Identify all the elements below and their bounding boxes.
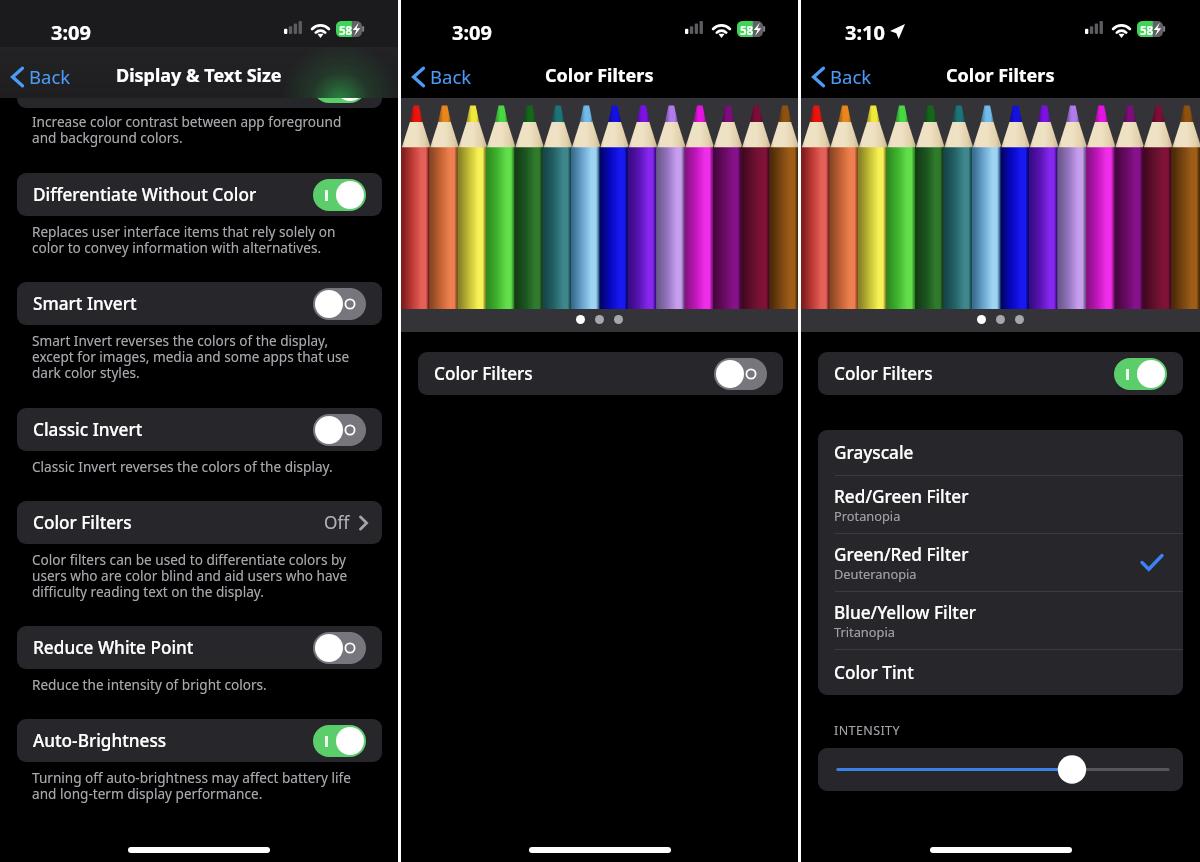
button[interactable]: Toggle off [714,358,767,390]
button[interactable]: Blue/Yellow Filter [818,592,1183,649]
staticText: Color Filters [434,362,533,385]
button[interactable]: Toggle off [313,414,366,446]
staticText: 3:10 [845,19,885,46]
button[interactable]: Color Filters [418,352,783,395]
staticText: 58 [1140,23,1154,39]
staticText: Deuteranopia [834,565,917,582]
staticText: Color Filters [545,63,654,88]
button[interactable]: Page 1 [977,315,986,324]
staticText: 58 [339,23,353,39]
staticText: Smart Invert [33,292,137,315]
button[interactable]: Page 3 [614,315,623,324]
staticText: 3:09 [51,19,91,46]
button[interactable]: Color Filters [17,501,382,544]
staticText: Smart Invert reverses the colors of the … [32,331,354,382]
staticText: Display & Text Size [116,63,282,88]
button[interactable]: Back [406,59,478,94]
button[interactable]: Differentiate Without Color [17,173,382,216]
button[interactable]: Back [5,59,77,94]
button[interactable]: Page 1 [576,315,585,324]
staticText: Protanopia [834,507,901,524]
button[interactable]: Red/Green Filter [818,476,1183,533]
button[interactable]: Toggle on [1114,358,1167,390]
button[interactable]: Toggle on [313,725,366,757]
staticText: Classic Invert reverses the colors of th… [32,457,354,476]
button[interactable]: Auto-Brightness [17,719,382,762]
button[interactable]: Green/Red Filter [818,534,1183,591]
staticText: Differentiate Without Color [33,183,257,206]
staticText: Increase color contrast between app fore… [32,112,354,147]
staticText: Tritanopia [834,623,895,640]
button[interactable]: Page 3 [1015,315,1024,324]
staticText: Off [324,511,350,534]
staticText: Color Filters [33,511,132,534]
staticText: Blue/Yellow Filter [834,601,977,624]
staticText: INTENSITY [834,722,900,739]
button[interactable]: Toggle on [313,179,366,211]
button[interactable]: Page 2 [996,315,1005,324]
staticText: Color Filters [834,362,933,385]
button[interactable]: Toggle on [313,71,366,103]
button[interactable]: Grayscale [818,430,1183,475]
other: Selected [1142,555,1162,570]
staticText: Back [430,64,472,89]
staticText: Color Filters [946,63,1055,88]
staticText: Reduce White Point [33,636,194,659]
button[interactable]: Toggle off [313,288,366,320]
button[interactable]: Back [806,59,878,94]
button[interactable]: Intensity slider [818,748,1183,791]
button[interactable]: Toggle off [313,632,366,664]
staticText: Back [830,64,872,89]
button[interactable]: Classic Invert [17,408,382,451]
button[interactable]: Color Filters [818,352,1183,395]
staticText: Classic Invert [33,418,143,441]
staticText: Auto-Brightness [33,729,167,752]
staticText: Back [29,64,71,89]
button[interactable]: Smart Invert [17,282,382,325]
staticText: Red/Green Filter [834,485,969,508]
staticText: Color filters can be used to differentia… [32,550,354,601]
button[interactable]: Color Tint [818,650,1183,695]
staticText: Replaces user interface items that rely … [32,222,354,257]
staticText: Grayscale [834,441,914,464]
staticText: Color Tint [834,661,914,684]
staticText: Reduce the intensity of bright colors. [32,675,354,694]
staticText: 3:09 [452,19,492,46]
button[interactable]: Page 2 [595,315,604,324]
staticText: 58 [740,23,754,39]
button[interactable]: Reduce White Point [17,626,382,669]
staticText: Green/Red Filter [834,543,969,566]
staticText: Turning off auto-brightness may affect b… [32,768,354,803]
